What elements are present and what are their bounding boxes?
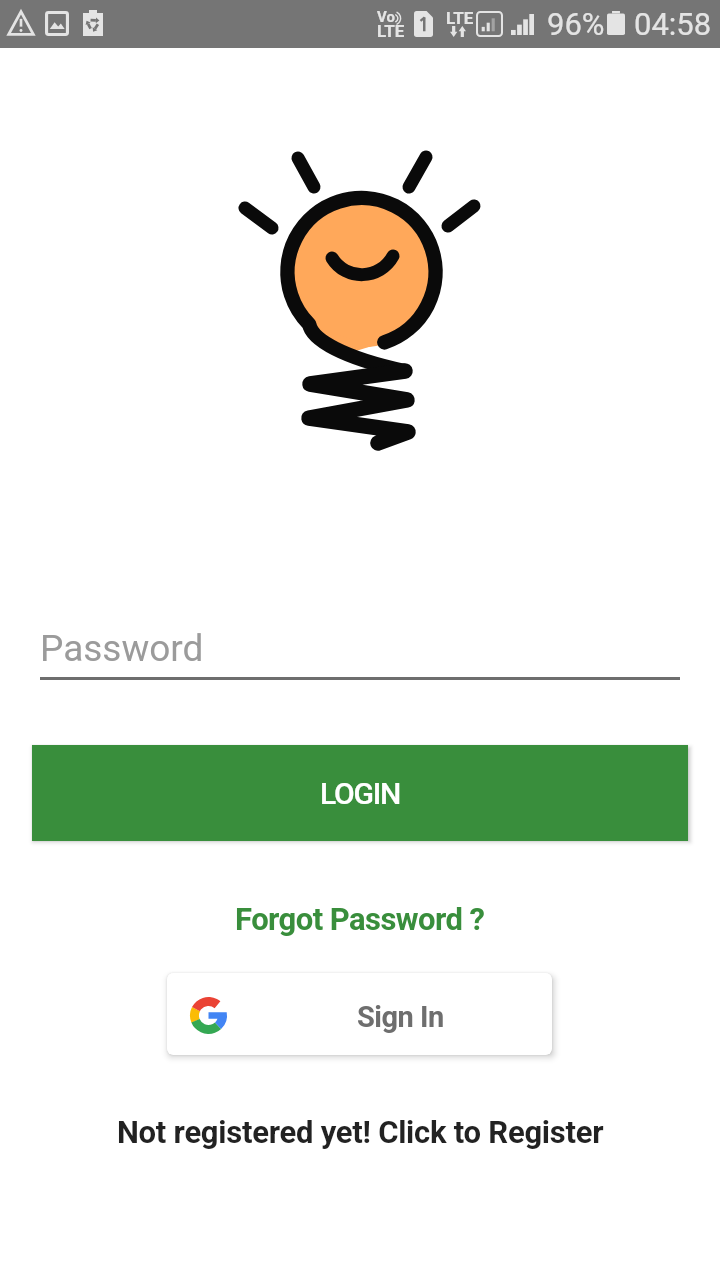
- staticText: LTE: [446, 8, 474, 28]
- staticText: Sign In: [357, 1000, 444, 1034]
- staticText: 04:58: [634, 6, 712, 42]
- button[interactable]: Password: [40, 620, 680, 682]
- button[interactable]: Sign In: [167, 973, 552, 1055]
- staticText: 96%: [547, 6, 605, 42]
- button[interactable]: LOGIN: [32, 745, 688, 841]
- staticText: LTE: [377, 21, 405, 41]
- staticText: Password: [40, 627, 204, 670]
- staticText: Vo: [377, 8, 395, 26]
- button[interactable]: Not registered yet! Click to Register: [105, 1108, 616, 1156]
- button[interactable]: Forgot Password ?: [221, 895, 499, 943]
- staticText: LOGIN: [320, 776, 401, 811]
